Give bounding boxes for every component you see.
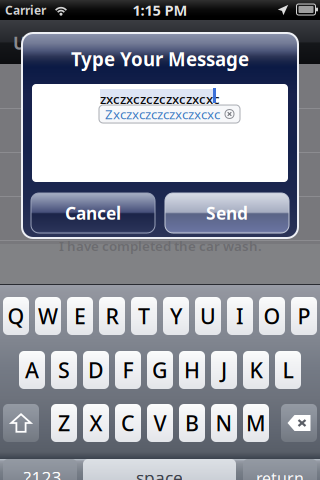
staticText: M — [246, 409, 266, 437]
staticText: return — [256, 467, 304, 480]
staticText: Zxczxczczczxczxcxc — [105, 105, 220, 123]
button[interactable]: B — [179, 404, 205, 442]
staticText: D — [88, 356, 104, 384]
button[interactable]: M — [243, 404, 269, 442]
button[interactable]: J — [211, 351, 237, 389]
staticText: .?123 — [18, 466, 61, 480]
button[interactable]: Delete — [281, 404, 317, 442]
staticText: Cancel — [65, 201, 121, 224]
button[interactable]: V — [147, 404, 173, 442]
staticText: V — [153, 409, 166, 437]
staticText: H — [184, 356, 200, 384]
button[interactable]: return — [243, 459, 317, 480]
button[interactable]: space — [83, 459, 236, 480]
button[interactable]: Z — [51, 404, 77, 442]
button[interactable]: Send — [165, 193, 289, 233]
button[interactable]: Y — [163, 297, 189, 335]
staticText: I — [236, 302, 244, 330]
staticText: S — [58, 356, 70, 384]
staticText: zxczxczczczxczxcxc — [100, 90, 220, 108]
staticText: G — [152, 356, 168, 384]
staticText: N — [215, 409, 232, 437]
staticText: O — [263, 302, 280, 330]
button[interactable]: U — [195, 297, 221, 335]
button[interactable]: N — [211, 404, 237, 442]
staticText: space — [136, 466, 183, 480]
button[interactable]: A — [19, 351, 45, 389]
button[interactable]: R — [99, 297, 125, 335]
button[interactable]: G — [147, 351, 173, 389]
staticText: E — [74, 302, 86, 330]
button[interactable]: K — [243, 351, 269, 389]
staticText: K — [249, 356, 262, 384]
button[interactable]: Shift — [3, 404, 39, 442]
button[interactable]: H — [179, 351, 205, 389]
staticText: 1:15 PM — [132, 0, 187, 20]
staticText: B — [185, 409, 199, 437]
staticText: T — [138, 302, 150, 330]
button[interactable]: W — [35, 297, 61, 335]
staticText: I have completed the car wash. — [59, 237, 262, 255]
button[interactable]: E — [67, 297, 93, 335]
staticText: X — [89, 409, 102, 437]
staticText: R — [105, 302, 118, 330]
button[interactable]: L — [275, 351, 301, 389]
staticText: Send — [206, 201, 248, 224]
staticText: Carrier — [5, 2, 46, 18]
button[interactable]: D — [83, 351, 109, 389]
button[interactable]: Cancel — [31, 193, 155, 233]
button[interactable]: I — [227, 297, 253, 335]
staticText: W — [38, 302, 58, 330]
button[interactable]: Zxczxczczczxczxcxc — [99, 105, 240, 123]
button[interactable]: O — [259, 297, 285, 335]
staticText: A — [25, 356, 39, 384]
staticText: L — [282, 356, 293, 384]
button[interactable]: S — [51, 351, 77, 389]
staticText: Type Your Message — [71, 47, 249, 71]
button[interactable]: C — [115, 404, 141, 442]
staticText: Z — [58, 409, 70, 437]
button[interactable]: .?123 — [3, 459, 77, 480]
staticText: Update Job Status — [13, 31, 170, 54]
button[interactable]: P — [291, 297, 317, 335]
staticText: Y — [170, 302, 182, 330]
staticText: P — [297, 302, 310, 330]
staticText: Q — [7, 302, 24, 330]
staticText: U — [200, 302, 216, 330]
staticText: J — [221, 356, 227, 384]
button[interactable]: Q — [3, 297, 29, 335]
staticText: C — [121, 409, 135, 437]
staticText: F — [122, 356, 133, 384]
button[interactable]: F — [115, 351, 141, 389]
button[interactable]: X — [83, 404, 109, 442]
button[interactable]: T — [131, 297, 157, 335]
